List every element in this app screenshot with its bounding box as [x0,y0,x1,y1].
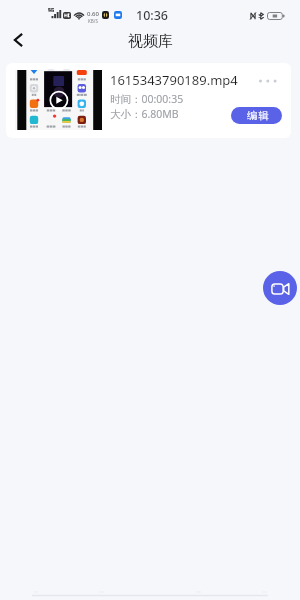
staticText: 1615343790189.mp4 [110,71,238,89]
staticText: 0.60 [87,10,99,18]
button[interactable]: 1615343790189.mp4 [6,63,291,138]
button[interactable]: 编辑 [231,107,282,124]
staticText: 10:36 [136,7,169,24]
staticText: 编辑 [247,109,271,122]
staticText: 时间：00:00:35 [110,92,184,106]
staticText: KB/S [88,18,98,24]
staticText: 视频库 [128,32,173,51]
button[interactable]: Record video [263,271,297,305]
button[interactable]: Back [4,27,32,55]
button[interactable]: More options [251,73,287,89]
staticText: 大小：6.80MB [110,107,179,121]
